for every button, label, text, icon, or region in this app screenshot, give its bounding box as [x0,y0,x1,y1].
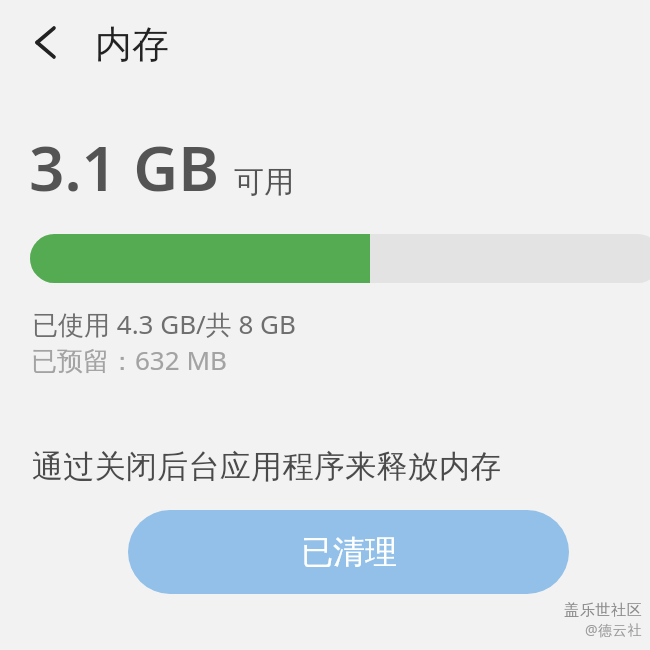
staticText: 3.1 GB [29,125,220,209]
button[interactable]: Back [1,0,89,86]
staticText: 已预留：632 MB [31,342,227,378]
button[interactable]: 已清理 [128,510,569,594]
staticText: 已使用 4.3 GB/共 8 GB [32,306,296,342]
staticText: 已清理 [301,532,397,572]
staticText: 盖乐世社区 [564,601,642,620]
staticText: 可用 [234,163,294,201]
staticText: @德云社 [585,620,642,639]
staticText: 内存 [95,21,169,68]
staticText: 通过关闭后台应用程序来释放内存 [32,447,502,486]
